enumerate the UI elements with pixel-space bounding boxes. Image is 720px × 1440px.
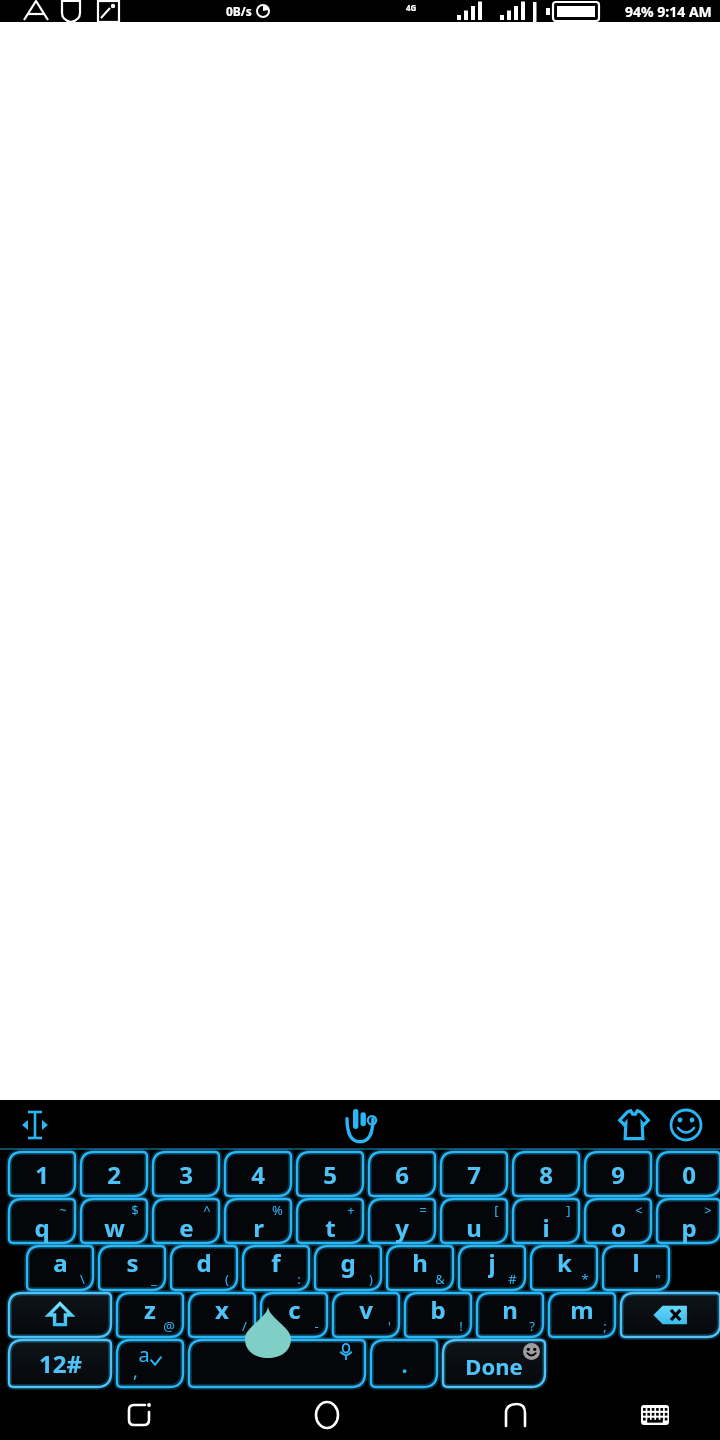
button[interactable]: 0 bbox=[657, 1152, 720, 1196]
button[interactable]: 4 bbox=[225, 1152, 291, 1196]
button[interactable]: s bbox=[99, 1246, 165, 1290]
staticText: 94% 9:14 AM bbox=[625, 2, 712, 21]
button[interactable]: 3 bbox=[153, 1152, 219, 1196]
staticText: 6 bbox=[395, 1158, 409, 1191]
staticText: < bbox=[635, 1201, 643, 1219]
button[interactable]: < bbox=[585, 1199, 651, 1243]
button[interactable]: $ bbox=[81, 1199, 147, 1243]
button[interactable]: v bbox=[333, 1293, 399, 1337]
button[interactable]: h bbox=[387, 1246, 453, 1290]
staticText: k bbox=[557, 1246, 572, 1278]
button[interactable]: ] bbox=[513, 1199, 579, 1243]
button[interactable]: m bbox=[549, 1293, 615, 1337]
staticText: ] bbox=[566, 1201, 571, 1219]
button[interactable]: 7 bbox=[441, 1152, 507, 1196]
staticText: b bbox=[430, 1293, 446, 1325]
staticText: w bbox=[104, 1211, 125, 1243]
button[interactable]: Done bbox=[443, 1340, 545, 1387]
button[interactable]: a bbox=[27, 1246, 93, 1290]
staticText: 3 bbox=[179, 1158, 193, 1191]
other: Numbers and symbols bbox=[9, 1340, 111, 1387]
staticText: a bbox=[53, 1246, 68, 1278]
button[interactable]: = bbox=[369, 1199, 435, 1243]
other: Done bbox=[443, 1340, 545, 1387]
button[interactable]: d bbox=[171, 1246, 237, 1290]
staticText: ^ bbox=[203, 1201, 211, 1219]
staticText: . bbox=[401, 1349, 408, 1379]
other: Language bbox=[117, 1340, 183, 1387]
staticText: ? bbox=[529, 1317, 535, 1335]
button[interactable]: ~ bbox=[9, 1199, 75, 1243]
staticText: = bbox=[419, 1201, 427, 1219]
button[interactable]: 2 bbox=[81, 1152, 147, 1196]
staticText: 4G bbox=[406, 2, 417, 13]
button[interactable]: a bbox=[117, 1340, 183, 1387]
staticText: y bbox=[395, 1211, 409, 1243]
staticText: p bbox=[681, 1211, 697, 1243]
staticText: v bbox=[359, 1293, 373, 1325]
staticText: : bbox=[297, 1270, 301, 1288]
button[interactable]: c bbox=[261, 1293, 327, 1337]
button[interactable]: > bbox=[657, 1199, 720, 1243]
button[interactable]: l bbox=[603, 1246, 669, 1290]
staticText: 8 bbox=[539, 1158, 553, 1191]
staticText: s bbox=[126, 1246, 139, 1278]
button[interactable]: j bbox=[459, 1246, 525, 1290]
staticText: ; bbox=[603, 1317, 607, 1335]
button[interactable]: f bbox=[243, 1246, 309, 1290]
button[interactable]: Home bbox=[303, 1391, 351, 1439]
staticText: % bbox=[272, 1201, 283, 1219]
staticText: * bbox=[581, 1270, 589, 1288]
button[interactable]: 1 bbox=[9, 1152, 75, 1196]
button[interactable]: ^ bbox=[153, 1199, 219, 1243]
button[interactable]: Switch keyboard bbox=[631, 1391, 679, 1439]
button[interactable]: 9 bbox=[585, 1152, 651, 1196]
staticText: [ bbox=[494, 1201, 499, 1219]
staticText: 1 bbox=[35, 1158, 49, 1191]
staticText: q bbox=[34, 1211, 50, 1243]
button[interactable]: Back bbox=[491, 1391, 539, 1439]
staticText: - bbox=[314, 1317, 319, 1335]
staticText: d bbox=[196, 1246, 212, 1278]
button[interactable]: Emoji bbox=[660, 1100, 712, 1150]
staticText: 5 bbox=[323, 1158, 337, 1191]
button[interactable]: n bbox=[477, 1293, 543, 1337]
button[interactable]: + bbox=[297, 1199, 363, 1243]
button[interactable]: 8 bbox=[513, 1152, 579, 1196]
button[interactable]: k bbox=[531, 1246, 597, 1290]
button[interactable]: 6 bbox=[369, 1152, 435, 1196]
button[interactable] bbox=[621, 1293, 720, 1337]
staticText: ) bbox=[369, 1270, 373, 1288]
staticText: _ bbox=[151, 1270, 157, 1288]
staticText: ! bbox=[459, 1317, 463, 1335]
staticText: 4 bbox=[251, 1158, 265, 1191]
staticText: 0 bbox=[682, 1158, 696, 1191]
button[interactable]: Theme bbox=[608, 1100, 660, 1150]
staticText: > bbox=[704, 1201, 712, 1219]
button[interactable]: 5 bbox=[297, 1152, 363, 1196]
button[interactable]: Cursor control bbox=[12, 1102, 58, 1148]
staticText: " bbox=[655, 1270, 661, 1288]
staticText: i bbox=[542, 1211, 550, 1243]
staticText: \ bbox=[80, 1270, 85, 1288]
staticText: r bbox=[253, 1211, 264, 1243]
button[interactable]: Keyboard menu bbox=[334, 1100, 386, 1150]
button[interactable]: . bbox=[371, 1340, 437, 1387]
other: Shift bbox=[9, 1293, 111, 1337]
button[interactable] bbox=[9, 1293, 111, 1337]
staticText: j bbox=[488, 1246, 496, 1278]
button[interactable]: 12# bbox=[9, 1340, 111, 1387]
button[interactable]: z bbox=[117, 1293, 183, 1337]
staticText: e bbox=[179, 1211, 194, 1243]
staticText: ' bbox=[388, 1317, 391, 1335]
button[interactable]: [ bbox=[441, 1199, 507, 1243]
button[interactable]: Recents bbox=[115, 1391, 163, 1439]
button[interactable]: g bbox=[315, 1246, 381, 1290]
staticText: , bbox=[133, 1359, 138, 1384]
button[interactable]: b bbox=[405, 1293, 471, 1337]
staticText: @ bbox=[163, 1317, 175, 1335]
button[interactable] bbox=[189, 1340, 365, 1387]
staticText: u bbox=[466, 1211, 482, 1243]
button[interactable]: x bbox=[189, 1293, 255, 1337]
button[interactable]: % bbox=[225, 1199, 291, 1243]
